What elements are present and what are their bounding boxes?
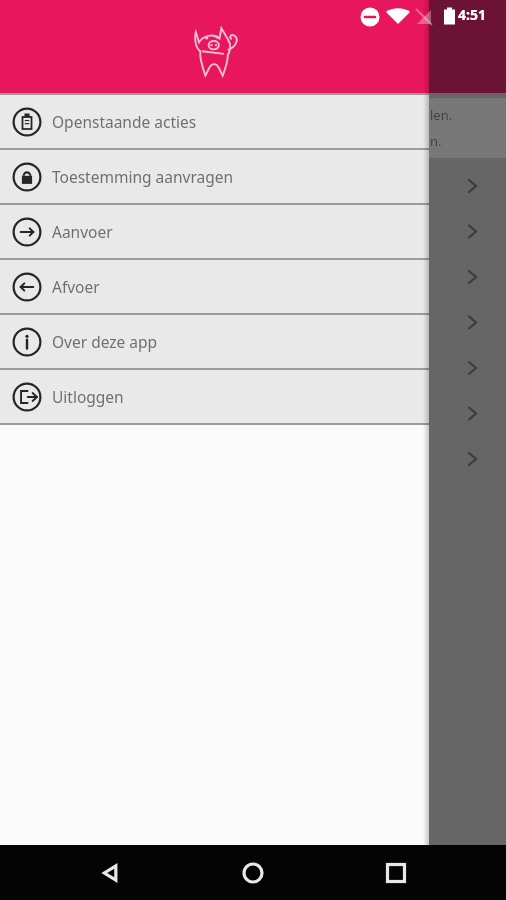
button[interactable]: Home bbox=[221, 845, 285, 900]
button[interactable]: Recent apps bbox=[364, 845, 428, 900]
button[interactable]: Over deze app bbox=[0, 315, 429, 368]
button[interactable]: Afvoer bbox=[0, 260, 429, 313]
button[interactable]: Toestemming aanvragen bbox=[0, 150, 429, 203]
staticText: 4:51 bbox=[458, 5, 486, 24]
staticText: Over deze app bbox=[52, 331, 158, 352]
button[interactable]: Openstaande acties bbox=[0, 95, 429, 148]
staticText: Aanvoer bbox=[52, 221, 113, 242]
staticText: len. bbox=[430, 106, 453, 124]
staticText: Afvoer bbox=[52, 276, 100, 297]
staticText: n. bbox=[430, 132, 442, 150]
button[interactable]: Aanvoer bbox=[0, 205, 429, 258]
button[interactable]: Back bbox=[79, 845, 143, 900]
staticText: Toestemming aanvragen bbox=[52, 166, 234, 187]
staticText: Openstaande acties bbox=[52, 111, 197, 132]
staticText: Uitloggen bbox=[52, 386, 124, 407]
button[interactable]: Uitloggen bbox=[0, 370, 429, 423]
